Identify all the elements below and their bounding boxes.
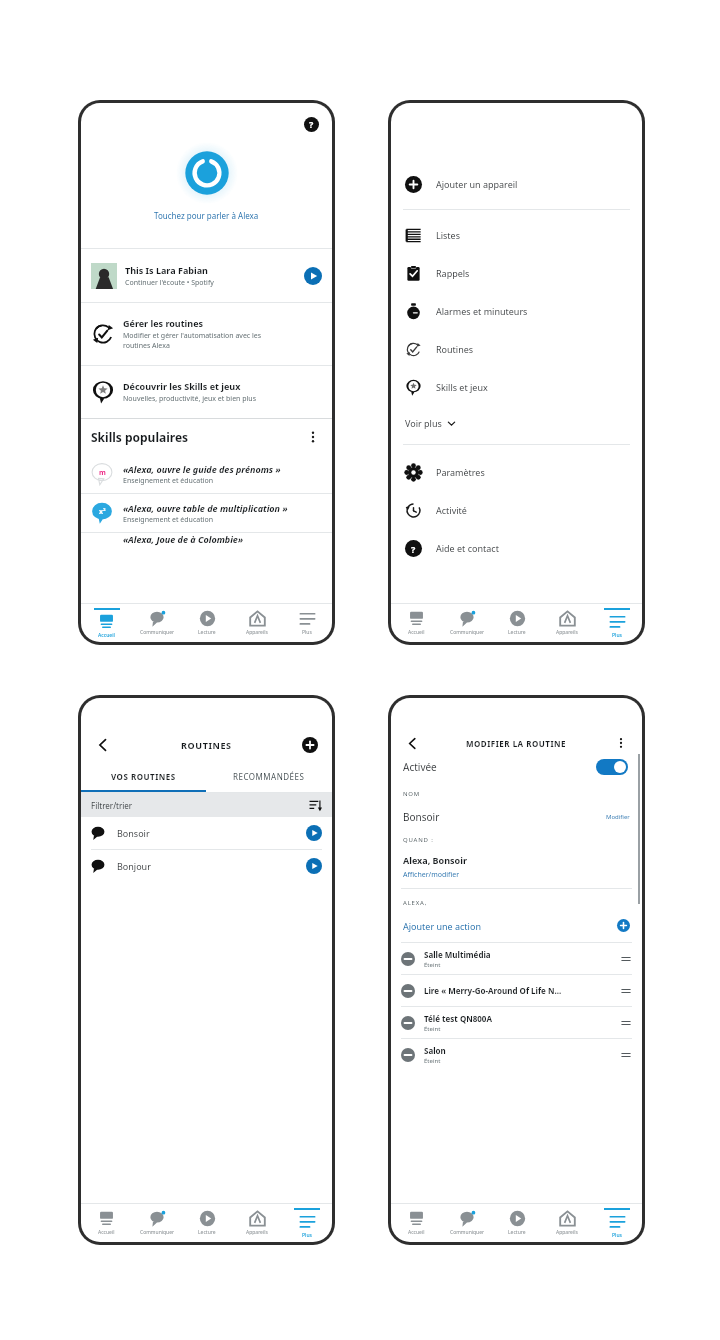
button[interactable]: Plus d'options [304,428,322,446]
button[interactable]: Rappels [391,254,642,292]
button[interactable]: Touchez pour parler à Alexa [154,142,259,221]
button[interactable]: Salle Multimédia [391,943,642,974]
other: Réordonner [620,1017,632,1029]
staticText: Communiquer [450,629,485,636]
button[interactable]: Appareils [542,604,592,642]
button[interactable]: Accueil [391,604,442,642]
staticText: Modifier [606,813,630,821]
staticText: ROUTINES [181,739,232,751]
button[interactable]: Exécuter Bonsoir [306,825,322,841]
button[interactable]: Gérer les routines [81,303,332,365]
staticText: Éteint [424,1025,441,1033]
staticText: Lecture [508,629,526,636]
other: Réordonner [620,985,632,997]
staticText: Lire « Merry-Go-Around Of Life N... [424,985,562,996]
staticText: This Is Lara Fabian [125,264,208,276]
staticText: QUAND : [403,836,434,844]
button[interactable]: Paramètres [391,453,642,491]
staticText: Appareils [556,1229,578,1236]
button[interactable]: Appareils [232,604,282,642]
button[interactable]: Communiquer [442,1204,492,1242]
button[interactable]: Appareils [232,1204,282,1242]
button[interactable]: m [81,455,332,493]
button[interactable]: Filtrer/trier [81,793,332,817]
button[interactable]: Lecture [304,267,322,285]
button[interactable]: Plus [282,604,332,642]
other: Réordonner [620,953,632,965]
staticText: VOS ROUTINES [111,771,176,782]
staticText: m [99,468,106,478]
button[interactable]: x² [81,494,332,532]
button[interactable]: Ajouter une action [391,919,642,932]
button[interactable]: Activée [391,754,642,780]
button[interactable]: Plus d'options [612,734,630,752]
button[interactable]: Accueil [391,1204,442,1242]
button[interactable]: ? [391,529,642,567]
button[interactable]: Ajouter un appareil [391,165,642,203]
staticText: Aide et contact [436,542,499,554]
button[interactable]: Routines [391,330,642,368]
button[interactable]: Afficher/modifier [403,870,460,880]
staticText: ? [309,118,314,130]
button[interactable]: Retour [93,735,113,755]
button[interactable]: «Alexa, Joue de à Colombie» [81,533,332,557]
button[interactable]: Communiquer [442,604,492,642]
button[interactable]: Lire « Merry-Go-Around Of Life N... [391,975,642,1006]
staticText: Gérer les routines [123,317,204,329]
button[interactable]: Bonsoir [391,810,642,824]
staticText: Skills et jeux [436,381,488,393]
staticText: Plus [302,1232,312,1239]
button[interactable]: Alarmes et minuteurs [391,292,642,330]
staticText: Salon [424,1045,446,1056]
button[interactable]: Accueil [81,1204,132,1242]
staticText: Communiquer [140,1229,175,1236]
button[interactable]: Lecture [182,1204,232,1242]
button[interactable]: Retour [403,734,421,752]
staticText: Appareils [246,629,268,636]
button[interactable]: Communiquer [132,604,182,642]
staticText: Paramètres [436,466,485,478]
button[interactable]: Plus [282,1204,332,1242]
button[interactable]: Voir plus [391,406,642,440]
staticText: Communiquer [450,1229,485,1236]
button[interactable]: Plus [592,1204,642,1242]
staticText: Listes [436,229,460,241]
button[interactable]: Télé test QN800A [391,1007,642,1038]
button[interactable]: Bonjour [81,850,332,882]
staticText: ALEXA, [403,899,428,907]
staticText: Éteint [424,1057,441,1065]
button[interactable]: Aide [302,115,320,133]
staticText: Touchez pour parler à Alexa [154,210,259,221]
staticText: Appareils [246,1229,268,1236]
staticText: Routines [436,343,474,355]
staticText: Activité [436,504,467,516]
button[interactable]: Exécuter Bonjour [306,858,322,874]
button[interactable]: VOS ROUTINES [81,762,206,790]
button[interactable]: Lecture [492,604,542,642]
button[interactable]: Listes [391,216,642,254]
button[interactable]: This Is Lara Fabian [81,249,332,302]
button[interactable]: Appareils [542,1204,592,1242]
staticText: Plus [302,629,312,636]
staticText: routines Alexa [123,341,170,351]
button[interactable]: Lecture [492,1204,542,1242]
staticText: Appareils [556,629,578,636]
staticText: Modifier et gérer l'automatisation avec … [123,331,262,341]
staticText: Lecture [508,1229,526,1236]
button[interactable]: RECOMMANDÉES [206,762,332,790]
button[interactable]: Communiquer [132,1204,182,1242]
button[interactable]: Salon [391,1039,642,1070]
other: Réordonner [620,1049,632,1061]
button[interactable]: Accueil [81,604,132,642]
button[interactable]: Lecture [182,604,232,642]
staticText: Skills populaires [91,429,304,445]
button[interactable]: Plus [592,604,642,642]
button[interactable]: Activité [391,491,642,529]
button[interactable]: Bonsoir [81,817,332,849]
staticText: Ajouter un appareil [436,178,518,190]
staticText: Accueil [98,1229,115,1236]
button[interactable]: Découvrir les Skills et jeux [81,366,332,418]
button[interactable]: Skills et jeux [391,368,642,406]
staticText: Voir plus [405,417,442,429]
button[interactable]: Ajouter une routine [300,735,320,755]
